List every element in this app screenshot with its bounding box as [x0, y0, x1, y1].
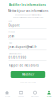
button[interactable]: Messages: [28, 91, 42, 97]
staticText: vous accompagner dans vos démarches.: [12, 17, 43, 18]
staticText: Nom: [8, 20, 11, 22]
button[interactable]: Agenda: [14, 91, 28, 97]
staticText: Profil: [47, 95, 51, 97]
button[interactable]: Supprimer mon compte: [0, 81, 56, 84]
staticText: E-mail: [8, 42, 11, 44]
staticText: Dupont: [8, 24, 19, 27]
button[interactable]: Profil: [42, 91, 56, 97]
staticText: 01/01/1990: [8, 56, 26, 59]
staticText: Ces données nous permettent de mieux: [14, 14, 41, 16]
staticText: Messages: [31, 95, 39, 97]
staticText: Modifier les informations: [8, 3, 45, 7]
button[interactable]: Accueil: [0, 91, 14, 97]
staticText: Jean: [8, 34, 14, 38]
staticText: Mettez à jour vos informations: [8, 9, 48, 13]
staticText: Prénom: [8, 31, 14, 33]
staticText: Date de naissance: [8, 53, 21, 55]
staticText: Rappel de mes droits: [8, 64, 38, 67]
staticText: Supprimer mon compte: [20, 81, 36, 83]
button[interactable]: Modifier: [11, 71, 45, 78]
staticText: Modifier: [22, 73, 34, 76]
staticText: jean.dupont@mail.fr: [8, 45, 36, 49]
staticText: Accueil: [4, 95, 9, 97]
